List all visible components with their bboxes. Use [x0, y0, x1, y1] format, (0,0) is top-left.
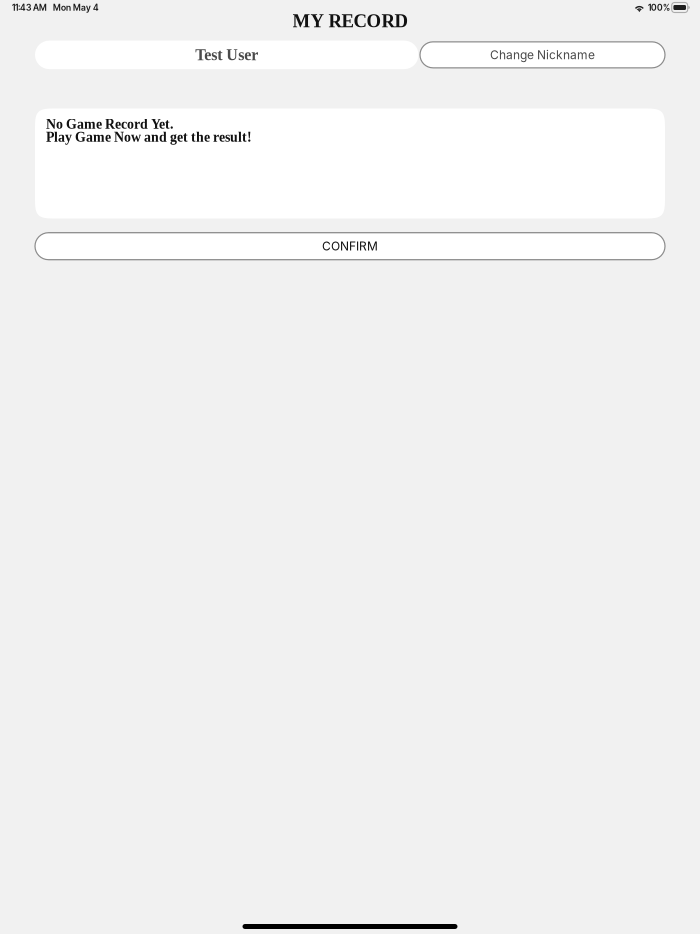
- staticText: MY RECORD: [292, 11, 407, 31]
- staticText: Mon May 4: [47, 2, 99, 13]
- staticText: Play Game Now and get the result!: [46, 129, 252, 145]
- button[interactable]: Change Nickname: [420, 42, 665, 68]
- staticText: 11:43 AM: [12, 2, 47, 13]
- staticText: Test User: [195, 46, 258, 64]
- staticText: No Game Record Yet.: [46, 116, 173, 132]
- staticText: CONFIRM: [322, 239, 378, 253]
- staticText: Change Nickname: [490, 48, 595, 62]
- staticText: 100%: [644, 2, 670, 13]
- button[interactable]: CONFIRM: [35, 233, 665, 260]
- button[interactable]: Test User: [35, 41, 418, 69]
